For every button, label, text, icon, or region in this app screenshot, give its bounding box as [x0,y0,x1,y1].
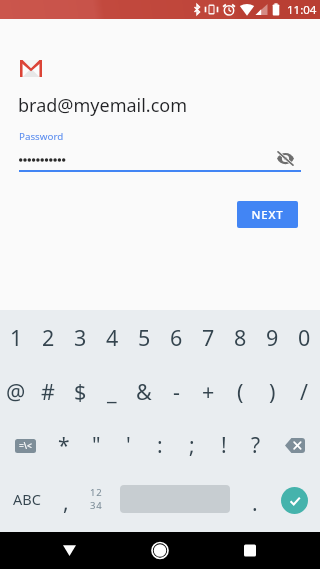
staticText: 12 [90,486,103,499]
button[interactable]: 5 [128,310,160,364]
button[interactable]: Delete [272,418,320,472]
staticText: + [202,377,215,406]
staticText: ; [189,431,195,460]
button[interactable]: + [192,364,224,418]
staticText: 3 [74,323,87,352]
button[interactable]: @ [0,364,32,418]
button[interactable]: 1 [0,310,32,364]
staticText: 6 [170,323,183,352]
staticText: 9 [266,323,279,352]
button[interactable]: 7 [192,310,224,364]
button[interactable]: Numbers [78,472,115,526]
staticText: . [252,489,258,518]
button[interactable]: 9 [256,310,288,364]
staticText: 0 [298,323,311,352]
button[interactable]: ; [176,418,208,472]
staticText: - [173,377,180,406]
staticText: NEXT [251,207,284,223]
staticText: 7 [202,323,215,352]
staticText: _ [107,377,117,406]
button[interactable]: $ [64,364,96,418]
button[interactable]: : [144,418,176,472]
button[interactable]: ' [112,418,144,472]
button[interactable]: - [160,364,192,418]
staticText: 1 [10,323,23,352]
staticText: * [58,431,70,460]
button[interactable]: Symbols [0,418,50,472]
button[interactable]: . [235,472,274,526]
button[interactable]: ABC [0,472,52,526]
button[interactable]: 3 [64,310,96,364]
staticText: 2 [42,323,55,352]
button[interactable]: Back [46,532,94,569]
staticText: =\< [19,440,32,452]
button[interactable]: * [48,418,80,472]
button[interactable]: & [128,364,160,418]
button[interactable]: ! [208,418,240,472]
button[interactable]: _ [96,364,128,418]
button[interactable]: Enter [269,472,320,526]
staticText: " [92,431,101,460]
staticText: $ [74,377,87,406]
staticText: : [157,431,163,460]
button[interactable]: / [288,364,320,418]
staticText: , [63,488,69,517]
button[interactable]: # [32,364,64,418]
staticText: & [136,377,152,406]
button[interactable]: Show password [275,148,296,169]
button[interactable]: NEXT [237,201,298,228]
staticText: 4 [106,323,119,352]
button[interactable]: ? [240,418,272,472]
staticText: ) [269,377,276,406]
button[interactable]: 6 [160,310,192,364]
staticText: 8 [234,323,247,352]
staticText: Password [19,130,64,143]
staticText: ! [221,431,227,460]
staticText: # [41,377,55,406]
button[interactable]: Space [115,472,235,526]
staticText: ( [237,377,244,406]
staticText: ? [251,431,261,460]
staticText: ABC [13,489,41,509]
button[interactable]: ) [256,364,288,418]
staticText: @ [6,377,26,406]
button[interactable]: 0 [288,310,320,364]
staticText: 11:04 [287,2,317,18]
button[interactable]: 2 [32,310,64,364]
button[interactable]: Recent apps [226,532,274,569]
staticText: 34 [90,499,103,512]
staticText: 5 [138,323,151,352]
button[interactable]: " [80,418,112,472]
button[interactable]: 4 [96,310,128,364]
button[interactable]: ( [224,364,256,418]
staticText: ' [126,431,131,460]
button[interactable]: Home [136,532,184,569]
staticText: / [300,377,308,406]
button[interactable]: 8 [224,310,256,364]
staticText: brad@myemail.com [18,93,188,118]
button[interactable]: , [53,472,79,526]
